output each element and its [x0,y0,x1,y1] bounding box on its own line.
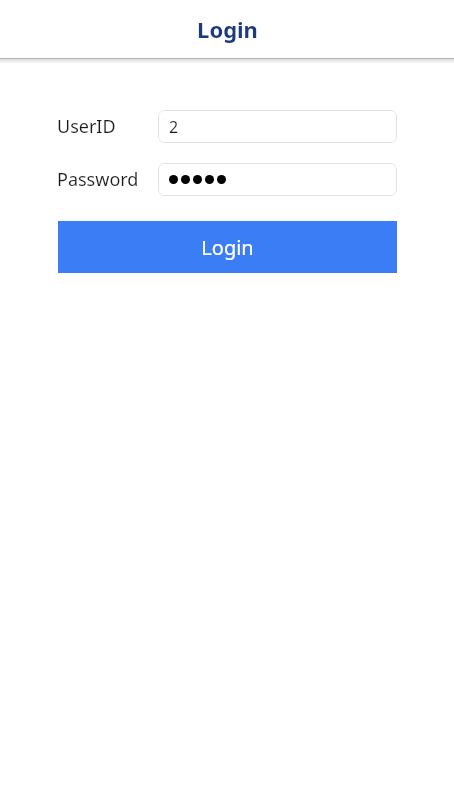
staticText: Password [57,167,139,192]
staticText: Login [201,234,254,261]
staticText: UserID [57,114,116,139]
button[interactable]: UserID [158,110,397,143]
staticText: 2 [169,116,179,138]
staticText: Login [197,14,258,44]
button[interactable]: Password [158,163,397,196]
button[interactable]: Login [58,221,397,273]
